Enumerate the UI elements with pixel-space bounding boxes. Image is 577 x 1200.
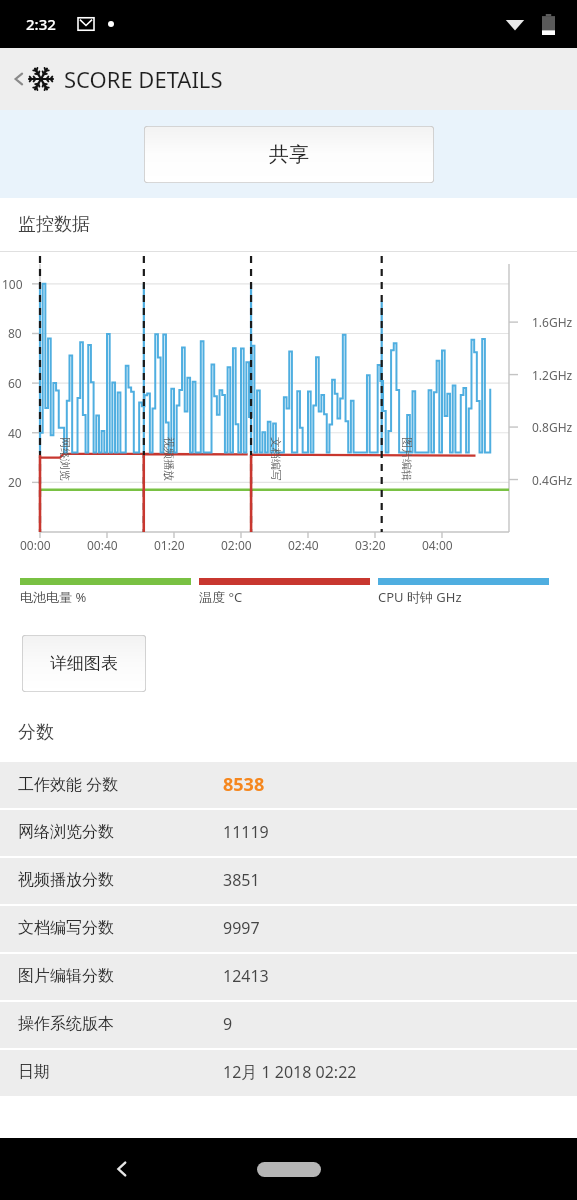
staticText: 20 bbox=[8, 474, 22, 490]
staticText: 文档编写分数 bbox=[18, 918, 114, 938]
staticText: 3851 bbox=[223, 869, 260, 891]
staticText: 11119 bbox=[223, 821, 269, 843]
staticText: 0.8GHz bbox=[532, 419, 573, 435]
staticText: 01:20 bbox=[154, 537, 185, 553]
button[interactable]: 日期 bbox=[0, 1048, 577, 1096]
staticText: 文档编写 bbox=[269, 437, 283, 481]
staticText: 03:20 bbox=[355, 537, 386, 553]
button[interactable]: 网络浏览分数 bbox=[0, 808, 577, 856]
staticText: 0.4GHz bbox=[532, 472, 573, 488]
staticText: 视频播放 bbox=[162, 437, 176, 481]
button[interactable]: 操作系统版本 bbox=[0, 1000, 577, 1048]
staticText: 电池电量 % bbox=[20, 588, 87, 606]
button[interactable]: 视频播放分数 bbox=[0, 856, 577, 904]
staticText: 00:40 bbox=[87, 537, 118, 553]
staticText: 40 bbox=[8, 425, 22, 441]
button[interactable]: 图片编辑分数 bbox=[0, 952, 577, 1000]
staticText: 12413 bbox=[223, 965, 269, 987]
button[interactable]: 工作效能 分数 bbox=[0, 760, 577, 808]
button[interactable]: 文档编写分数 bbox=[0, 904, 577, 952]
button[interactable]: Back bbox=[8, 58, 227, 100]
staticText: 视频播放分数 bbox=[18, 870, 114, 890]
staticText: 图片编辑分数 bbox=[18, 966, 114, 986]
staticText: 8538 bbox=[223, 772, 265, 797]
staticText: 日期 bbox=[18, 1062, 50, 1082]
staticText: 04:00 bbox=[422, 537, 453, 553]
staticText: 02:40 bbox=[288, 537, 319, 553]
staticText: 分数 bbox=[18, 721, 54, 744]
staticText: SCORE DETAILS bbox=[64, 64, 223, 94]
staticText: 1.2GHz bbox=[532, 367, 573, 383]
staticText: 1.6GHz bbox=[532, 314, 573, 330]
staticText: 网络浏览分数 bbox=[18, 822, 114, 842]
staticText: 12月 1 2018 02:22 bbox=[223, 1061, 357, 1083]
staticText: 60 bbox=[8, 375, 22, 391]
staticText: 详细图表 bbox=[50, 653, 118, 674]
staticText: 监控数据 bbox=[18, 213, 90, 236]
staticText: 温度 °C bbox=[199, 588, 243, 606]
button[interactable]: Back bbox=[100, 1147, 144, 1191]
staticText: CPU 时钟 GHz bbox=[378, 588, 462, 606]
staticText: 80 bbox=[8, 325, 22, 341]
staticText: 工作效能 分数 bbox=[18, 773, 119, 795]
staticText: 2:32 bbox=[26, 14, 56, 34]
staticText: 9997 bbox=[223, 917, 260, 939]
staticText: 操作系统版本 bbox=[18, 1014, 114, 1034]
staticText: 00:00 bbox=[20, 537, 51, 553]
staticText: 9 bbox=[223, 1013, 233, 1035]
staticText: 网络浏览 bbox=[58, 437, 72, 481]
staticText: 02:00 bbox=[221, 537, 252, 553]
staticText: 图片编辑 bbox=[400, 437, 414, 481]
staticText: 共享 bbox=[269, 142, 309, 167]
button[interactable]: Home bbox=[257, 1162, 321, 1177]
staticText: 100 bbox=[2, 276, 23, 292]
button[interactable]: 详细图表 bbox=[22, 635, 146, 692]
button[interactable]: 共享 bbox=[144, 126, 434, 183]
